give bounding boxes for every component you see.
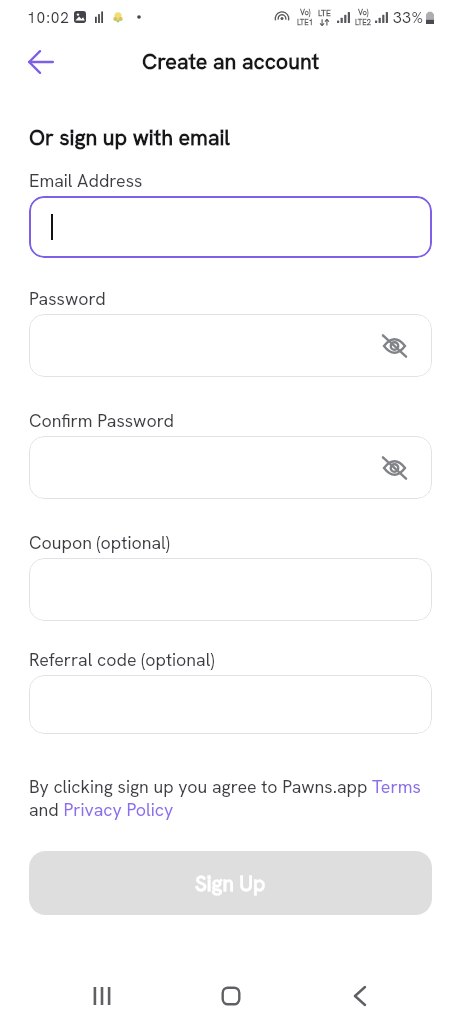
button[interactable]: Toggle password visibility bbox=[29, 314, 432, 377]
staticText: Vo) bbox=[358, 7, 369, 17]
staticText: Sign Up bbox=[195, 870, 266, 897]
button[interactable]: Home bbox=[203, 968, 258, 1023]
button[interactable] bbox=[29, 558, 432, 621]
staticText: Password bbox=[29, 287, 106, 310]
staticText: 33% bbox=[393, 7, 424, 27]
staticText: By clicking sign up you agree to Pawns.a… bbox=[29, 775, 432, 822]
staticText: LTE1 bbox=[297, 17, 314, 27]
staticText: Coupon (optional) bbox=[29, 531, 170, 554]
staticText: Vo) bbox=[300, 7, 311, 17]
staticText: LTE2 bbox=[355, 17, 372, 27]
button[interactable]: Toggle password visibility bbox=[376, 450, 412, 486]
button[interactable]: Toggle password visibility bbox=[29, 436, 432, 499]
staticText: LTE bbox=[318, 8, 331, 19]
staticText: Confirm Password bbox=[29, 409, 174, 432]
staticText: Referral code (optional) bbox=[29, 648, 215, 671]
staticText: Create an account bbox=[142, 47, 320, 75]
button[interactable]: Back bbox=[332, 968, 387, 1023]
staticText: 10:02 bbox=[27, 7, 70, 27]
button[interactable]: Back bbox=[19, 40, 63, 84]
button[interactable]: Sign Up bbox=[29, 851, 432, 915]
button[interactable] bbox=[29, 675, 432, 734]
staticText: Or sign up with email bbox=[29, 123, 231, 151]
button[interactable] bbox=[29, 196, 432, 258]
button[interactable]: Toggle password visibility bbox=[376, 328, 412, 364]
staticText: Email Address bbox=[29, 169, 143, 192]
button[interactable]: Recent apps bbox=[74, 968, 129, 1023]
